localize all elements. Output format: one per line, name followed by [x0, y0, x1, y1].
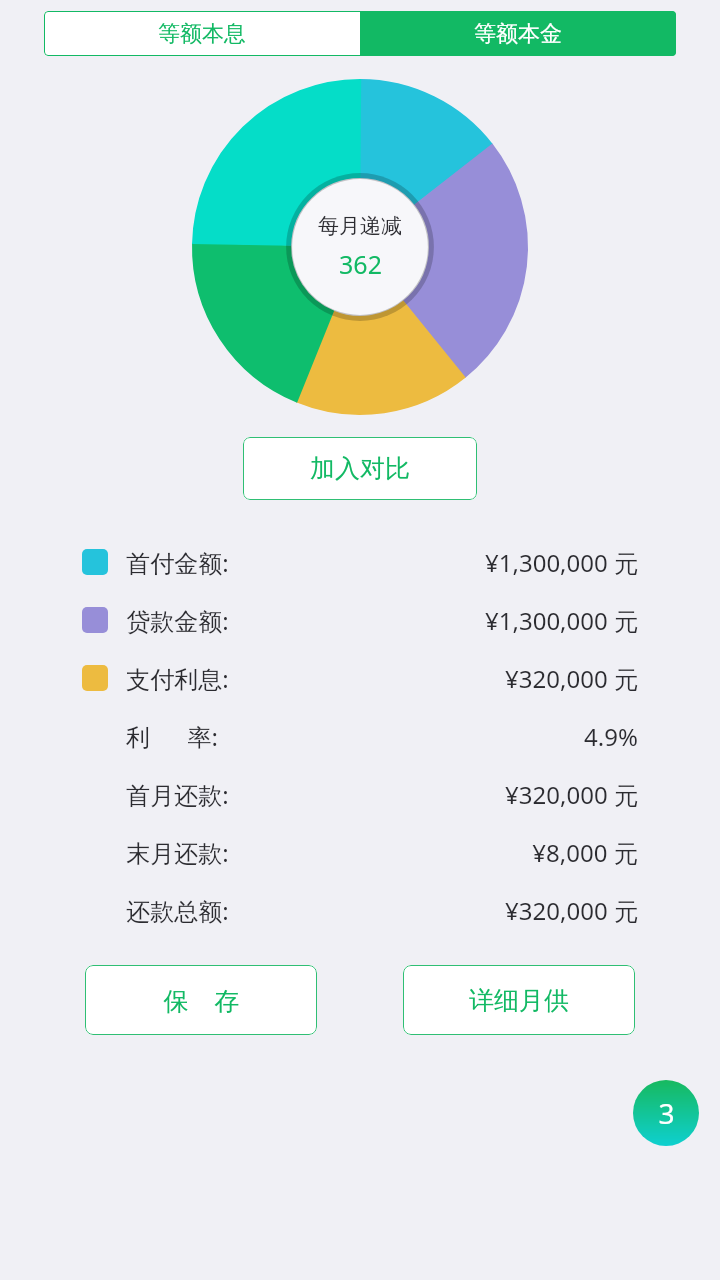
- staticText: ¥320,000 元: [505, 662, 638, 695]
- staticText: 加入对比: [310, 453, 410, 484]
- button[interactable]: 保 存: [85, 965, 317, 1035]
- button[interactable]: 等额本息: [44, 11, 360, 56]
- staticText: 详细月供: [469, 985, 569, 1016]
- staticText: ¥320,000 元: [505, 894, 638, 927]
- staticText: ¥320,000 元: [505, 778, 638, 811]
- staticText: 首月还款:: [126, 778, 229, 811]
- staticText: 还款总额:: [126, 894, 229, 927]
- staticText: 每月递减: [318, 213, 402, 239]
- button[interactable]: 首月还款:: [0, 765, 720, 823]
- staticText: 末月还款:: [126, 836, 229, 869]
- button[interactable]: 加入对比: [243, 437, 477, 500]
- staticText: 等额本金: [474, 20, 562, 48]
- staticText: 首付金额:: [126, 546, 229, 579]
- staticText: 贷款金额:: [126, 604, 229, 637]
- staticText: ¥8,000 元: [532, 836, 638, 869]
- staticText: 等额本息: [158, 20, 246, 48]
- staticText: 3: [658, 1094, 675, 1132]
- staticText: 4.9%: [584, 720, 638, 753]
- staticText: 保 存: [163, 983, 240, 1017]
- button[interactable]: 详细月供: [403, 965, 635, 1035]
- staticText: 利 率:: [126, 720, 218, 753]
- button[interactable]: 等额本金: [360, 11, 676, 56]
- button[interactable]: 末月还款:: [0, 823, 720, 881]
- button[interactable]: Comparison count 3: [633, 1080, 699, 1146]
- button[interactable]: 首付金额:: [0, 533, 720, 591]
- button[interactable]: 还款总额:: [0, 881, 720, 939]
- staticText: ¥1,300,000 元: [485, 604, 638, 637]
- button[interactable]: 利 率:: [0, 707, 720, 765]
- staticText: 362: [339, 247, 382, 281]
- button[interactable]: 支付利息:: [0, 649, 720, 707]
- staticText: ¥1,300,000 元: [485, 546, 638, 579]
- staticText: 支付利息:: [126, 662, 229, 695]
- button[interactable]: 贷款金额:: [0, 591, 720, 649]
